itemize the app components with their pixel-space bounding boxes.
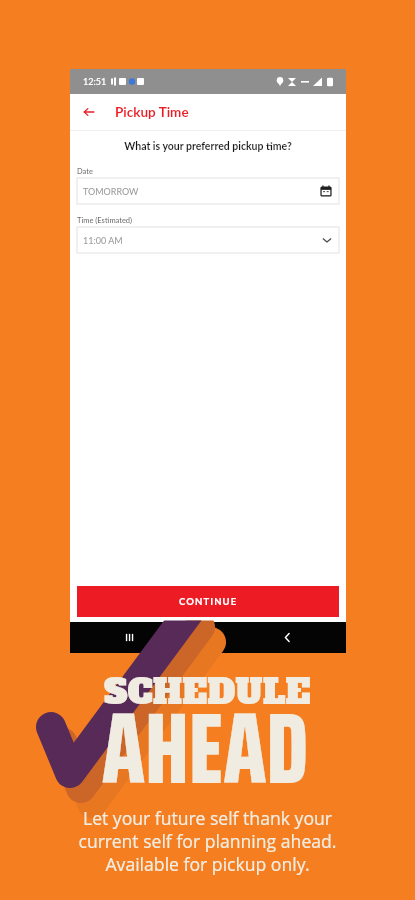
staticText: Date bbox=[77, 167, 93, 176]
staticText: Let your future self thank your current … bbox=[0, 806, 415, 876]
button[interactable]: Back bbox=[267, 622, 307, 653]
staticText: Time (Estimated) bbox=[77, 216, 133, 225]
button[interactable]: CONTINUE bbox=[77, 586, 339, 617]
button[interactable]: Back bbox=[79, 102, 99, 122]
staticText: 11:00 AM bbox=[83, 235, 123, 246]
button[interactable]: Recent apps bbox=[109, 622, 149, 653]
staticText: 12:51 bbox=[83, 76, 107, 87]
staticText: TOMORROW bbox=[83, 186, 139, 197]
staticText: CONTINUE bbox=[179, 596, 238, 607]
staticText: AHEAD bbox=[102, 668, 309, 827]
staticText: What is your preferred pickup time? bbox=[70, 140, 346, 153]
button[interactable]: 11:00 AM bbox=[77, 227, 339, 253]
staticText: Pickup Time bbox=[115, 104, 189, 120]
staticText: SCHEDULE bbox=[104, 668, 311, 716]
button[interactable]: Home bbox=[188, 622, 228, 653]
button[interactable]: TOMORROW bbox=[77, 178, 339, 204]
